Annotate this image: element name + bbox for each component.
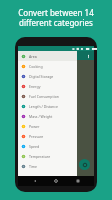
button[interactable]: Recents [73, 176, 83, 186]
button[interactable]: Energy [18, 81, 77, 91]
button[interactable]: Area [18, 51, 77, 61]
button[interactable]: Temperature [18, 151, 77, 161]
staticText: Cooking [29, 64, 43, 69]
staticText: Pressure [29, 134, 44, 139]
staticText: Energy [29, 84, 41, 89]
button[interactable]: Cooking [18, 61, 77, 71]
staticText: Temperature [29, 154, 51, 159]
button[interactable]: Fuel Consumption [18, 91, 77, 101]
button[interactable]: More options [85, 53, 91, 59]
staticText: Area [29, 54, 37, 59]
button[interactable]: Power [18, 121, 77, 131]
staticText: Time [29, 164, 38, 169]
staticText: Length / Distance [29, 104, 58, 109]
staticText: Fuel Consumption [29, 94, 59, 99]
staticText: Mass / Weight [29, 114, 53, 119]
button[interactable]: Back [30, 176, 40, 186]
staticText: Speed [29, 144, 40, 149]
button[interactable]: Swap units [79, 159, 90, 170]
staticText: Convert between 14 different categories [6, 7, 106, 28]
button[interactable]: Time [18, 161, 77, 171]
button[interactable]: Length / Distance [18, 101, 77, 111]
button[interactable]: Mass / Weight [18, 111, 77, 121]
staticText: Power [29, 124, 40, 129]
staticText: Digital Storage [29, 74, 54, 79]
button[interactable]: Pressure [18, 131, 77, 141]
button[interactable]: Home [51, 176, 61, 186]
button[interactable]: Speed [18, 141, 77, 151]
button[interactable]: Digital Storage [18, 71, 77, 81]
